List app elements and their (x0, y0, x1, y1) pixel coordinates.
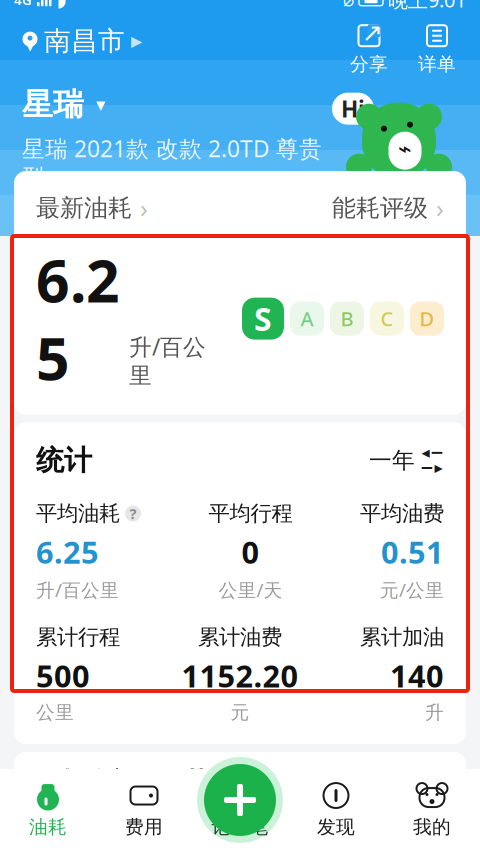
button[interactable]: 油耗 (0, 773, 96, 848)
staticText: 公里/天 (218, 577, 282, 602)
staticText: 详单 (418, 53, 456, 76)
staticText: 升/百公里 (36, 577, 119, 602)
staticText: 费用 (125, 815, 163, 838)
staticText: 4G (14, 0, 32, 9)
staticText: ▶ (434, 462, 442, 474)
button[interactable]: 详单 (412, 21, 462, 78)
staticText: 我的 (413, 815, 451, 838)
staticText: ↗ (361, 18, 382, 47)
staticText: ▾ (26, 37, 34, 55)
staticText: 南昌市 (44, 25, 125, 57)
staticText: ⌁ (398, 136, 412, 161)
staticText: 累计加油 (360, 624, 444, 650)
staticText: › (436, 191, 444, 225)
staticText: 最新油耗 (36, 193, 132, 223)
button[interactable]: 我的 (384, 773, 480, 848)
button[interactable]: 能耗评级 (332, 189, 444, 227)
staticText: C (380, 305, 393, 332)
staticText: 星瑞 (22, 86, 84, 123)
staticText: 平均油费 (360, 500, 444, 527)
staticText: ▶ (434, 784, 442, 796)
staticText: ? (129, 504, 136, 523)
staticText: › (140, 191, 148, 225)
button[interactable]: 发现 (288, 773, 384, 848)
staticText: 记一笔 (211, 815, 268, 838)
staticText: 140 (390, 655, 444, 696)
staticText: 星瑞 2021款 改款 2.0TD 尊贵型 (22, 133, 322, 191)
staticText: 平均行程 (208, 500, 292, 527)
staticText: 一年 (369, 446, 415, 474)
staticText: 油耗 (29, 815, 67, 838)
staticText: 累计油费 (198, 624, 282, 650)
staticText: ⌀ (343, 0, 354, 10)
button[interactable]: 记一笔 (192, 773, 288, 848)
button[interactable]: ▾ (18, 21, 146, 61)
staticText: ▾ (96, 94, 105, 115)
staticText: ◗ (56, 0, 66, 10)
staticText: 1152.20 (181, 655, 298, 696)
staticText: 6.25 (36, 532, 99, 572)
staticText: 元 (230, 701, 249, 724)
staticText: 油耗变化趋势 (50, 767, 212, 799)
staticText: 晚上9:01 (388, 0, 466, 13)
staticText: 0.51 (381, 532, 444, 572)
button[interactable]: 星瑞 (22, 84, 105, 125)
staticText: S (254, 297, 272, 340)
staticText: A (300, 305, 313, 332)
staticText: 累计行程 (36, 624, 120, 650)
staticText: Hi (341, 94, 365, 124)
staticText: 数据有变化，点此备份到云服务器。 (56, 200, 424, 228)
button[interactable]: 费用 (96, 773, 192, 848)
button[interactable]: 分享 (344, 21, 394, 78)
button[interactable]: 一年 (367, 442, 444, 478)
button[interactable]: 最新油耗 (36, 189, 148, 227)
button[interactable]: 记一笔 (197, 757, 283, 843)
staticText: 升 (425, 701, 444, 724)
staticText: 能耗评级 (332, 193, 428, 223)
staticText: B (340, 305, 353, 332)
staticText: 升/百公里 (129, 332, 206, 389)
staticText: 平均油耗 (36, 500, 120, 527)
staticText: 0 (241, 532, 259, 572)
staticText: 公里 (36, 701, 74, 724)
button[interactable]: 一年 (367, 765, 444, 801)
staticText: 6.25 (36, 241, 120, 396)
staticText: ◀ (421, 447, 429, 459)
staticText: 分享 (350, 53, 388, 76)
staticText: 发现 (317, 815, 355, 838)
staticText: 元/公里 (380, 577, 444, 602)
staticText: 500 (36, 655, 90, 696)
button[interactable]: 数据有变化，点此备份到云服务器。 (18, 191, 462, 237)
staticText: D (419, 305, 434, 332)
staticText: 统计 (36, 443, 92, 478)
staticText: ▶ (131, 33, 142, 49)
